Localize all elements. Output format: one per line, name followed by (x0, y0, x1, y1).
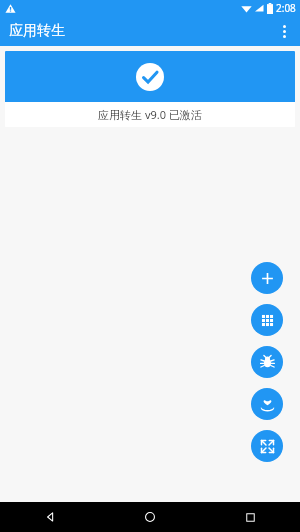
button[interactable]: Donate (251, 388, 283, 420)
button[interactable]: Apps (251, 304, 283, 336)
button[interactable]: Home (100, 502, 200, 532)
staticText: 应用转生 v9.0 已激活 (98, 107, 202, 122)
button[interactable]: More options (271, 18, 297, 44)
button[interactable]: Fullscreen (251, 430, 283, 462)
button[interactable]: Debug (251, 346, 283, 378)
staticText: 应用转生 (9, 22, 65, 40)
button[interactable]: 应用转生 v9.0 已激活 (5, 51, 295, 127)
staticText: 2:08 (276, 1, 296, 15)
button[interactable]: Add (251, 262, 283, 294)
button[interactable]: Recent apps (200, 502, 300, 532)
button[interactable]: Back (0, 502, 100, 532)
